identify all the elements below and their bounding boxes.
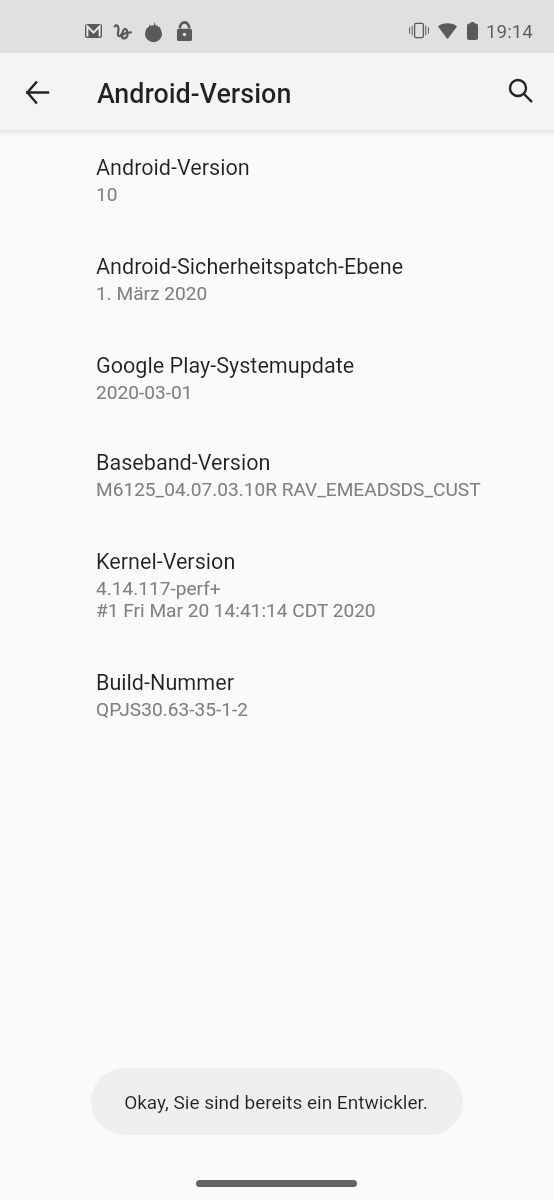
- staticText: Build-Nummer: [96, 670, 234, 695]
- button[interactable]: Baseband-Version: [0, 427, 554, 525]
- button[interactable]: Zurück: [13, 68, 61, 116]
- staticText: Android-Version: [97, 78, 292, 110]
- staticText: 2020-03-01: [96, 382, 193, 404]
- staticText: 19:14: [486, 21, 533, 42]
- staticText: QPJS30.63-35-1-2: [96, 699, 248, 721]
- staticText: Android-Sicherheitspatch-Ebene: [96, 254, 404, 279]
- staticText: M6125_04.07.03.10R RAV_EMEADSDS_CUST: [96, 479, 481, 501]
- staticText: 10: [96, 184, 118, 206]
- staticText: Android-Version: [96, 155, 250, 180]
- button[interactable]: Google Play-Systemupdate: [0, 329, 554, 427]
- button[interactable]: Okay, Sie sind bereits ein Entwickler.: [91, 1068, 463, 1135]
- staticText: Baseband-Version: [96, 450, 271, 475]
- button[interactable]: Build-Nummer: [0, 646, 554, 745]
- staticText: Okay, Sie sind bereits ein Entwickler.: [124, 1091, 428, 1114]
- staticText: Google Play-Systemupdate: [96, 353, 355, 378]
- button[interactable]: Android-Version: [0, 130, 554, 230]
- staticText: 4.14.117-perf+: [96, 578, 221, 600]
- button[interactable]: Kernel-Version: [0, 525, 554, 646]
- staticText: 1. März 2020: [96, 283, 208, 305]
- staticText: #1 Fri Mar 20 14:41:14 CDT 2020: [96, 600, 376, 622]
- button[interactable]: Suchen: [497, 67, 545, 115]
- staticText: Kernel-Version: [96, 549, 236, 574]
- button[interactable]: Android-Sicherheitspatch-Ebene: [0, 230, 554, 329]
